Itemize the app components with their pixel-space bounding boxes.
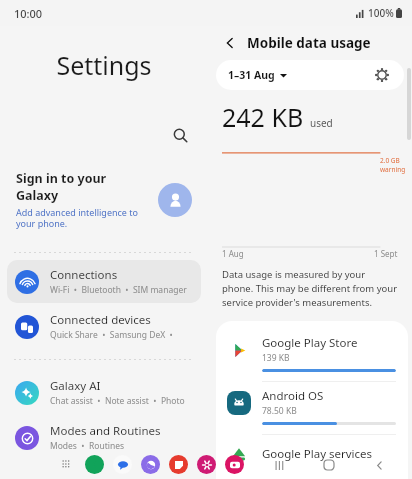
staticText: Connected devices	[50, 312, 151, 328]
button[interactable]: All apps	[58, 456, 76, 474]
staticText: 139 KB	[262, 352, 290, 364]
staticText: 78.50 KB	[262, 405, 297, 417]
button[interactable]: Modes and Routines	[7, 416, 201, 459]
staticText: Galaxy AI	[50, 378, 101, 394]
staticText: used	[310, 116, 333, 130]
staticText: 1 Sept	[374, 248, 398, 259]
staticText: Settings	[0, 48, 208, 82]
staticText: Android OS	[262, 388, 324, 404]
staticText: Chat assist • Note assist • Photo assist	[50, 395, 193, 407]
button[interactable]: 1–31 Aug	[222, 65, 293, 85]
button[interactable]: Google Play services	[216, 435, 408, 472]
staticText: Modes and Routines	[50, 423, 161, 439]
button[interactable]: Search	[166, 121, 194, 149]
staticText: Add advanced intelligence to your phone.	[16, 206, 150, 230]
button[interactable]: Back	[368, 454, 390, 476]
button[interactable]: Connected devices	[7, 305, 201, 348]
staticText: 1 Aug	[222, 248, 244, 259]
button[interactable]: App	[113, 455, 132, 474]
staticText: Connections	[50, 267, 118, 283]
staticText: 2.0 GB	[380, 156, 400, 165]
button[interactable]: App	[225, 455, 244, 474]
button[interactable]: Account	[158, 183, 192, 217]
button[interactable]: Settings	[370, 63, 394, 87]
button[interactable]: Google Play Store	[216, 329, 408, 381]
staticText: Sign in to your Galaxy	[16, 170, 150, 204]
staticText: 1–31 Aug	[228, 68, 275, 82]
button[interactable]: App	[169, 455, 188, 474]
button[interactable]: Back	[218, 31, 242, 55]
staticText: Google Play Store	[262, 335, 358, 351]
staticText: Google Play services	[262, 446, 373, 462]
staticText: Mobile data usage	[247, 34, 371, 52]
staticText: Quick Share • Samsung DeX • Android Auto	[50, 329, 193, 341]
button[interactable]: Galaxy AI	[7, 371, 201, 414]
button[interactable]: App	[197, 455, 216, 474]
button[interactable]: Sign in to your Galaxy	[0, 164, 208, 236]
staticText: Data usage is measured by your phone. Th…	[222, 268, 398, 309]
staticText: 10:00	[14, 6, 43, 21]
button[interactable]: App	[85, 455, 104, 474]
staticText: 100%	[368, 6, 394, 20]
staticText: warning	[380, 165, 406, 174]
button[interactable]: Android OS	[216, 382, 408, 434]
staticText: Modes • Routines	[50, 440, 125, 452]
button[interactable]: Connections	[7, 260, 201, 303]
button[interactable]: Recents	[268, 454, 290, 476]
staticText: Wi-Fi • Bluetooth • SIM manager	[50, 284, 187, 296]
button[interactable]: App	[141, 455, 160, 474]
staticText: 242 KB	[222, 100, 304, 134]
button[interactable]: Home	[318, 454, 340, 476]
